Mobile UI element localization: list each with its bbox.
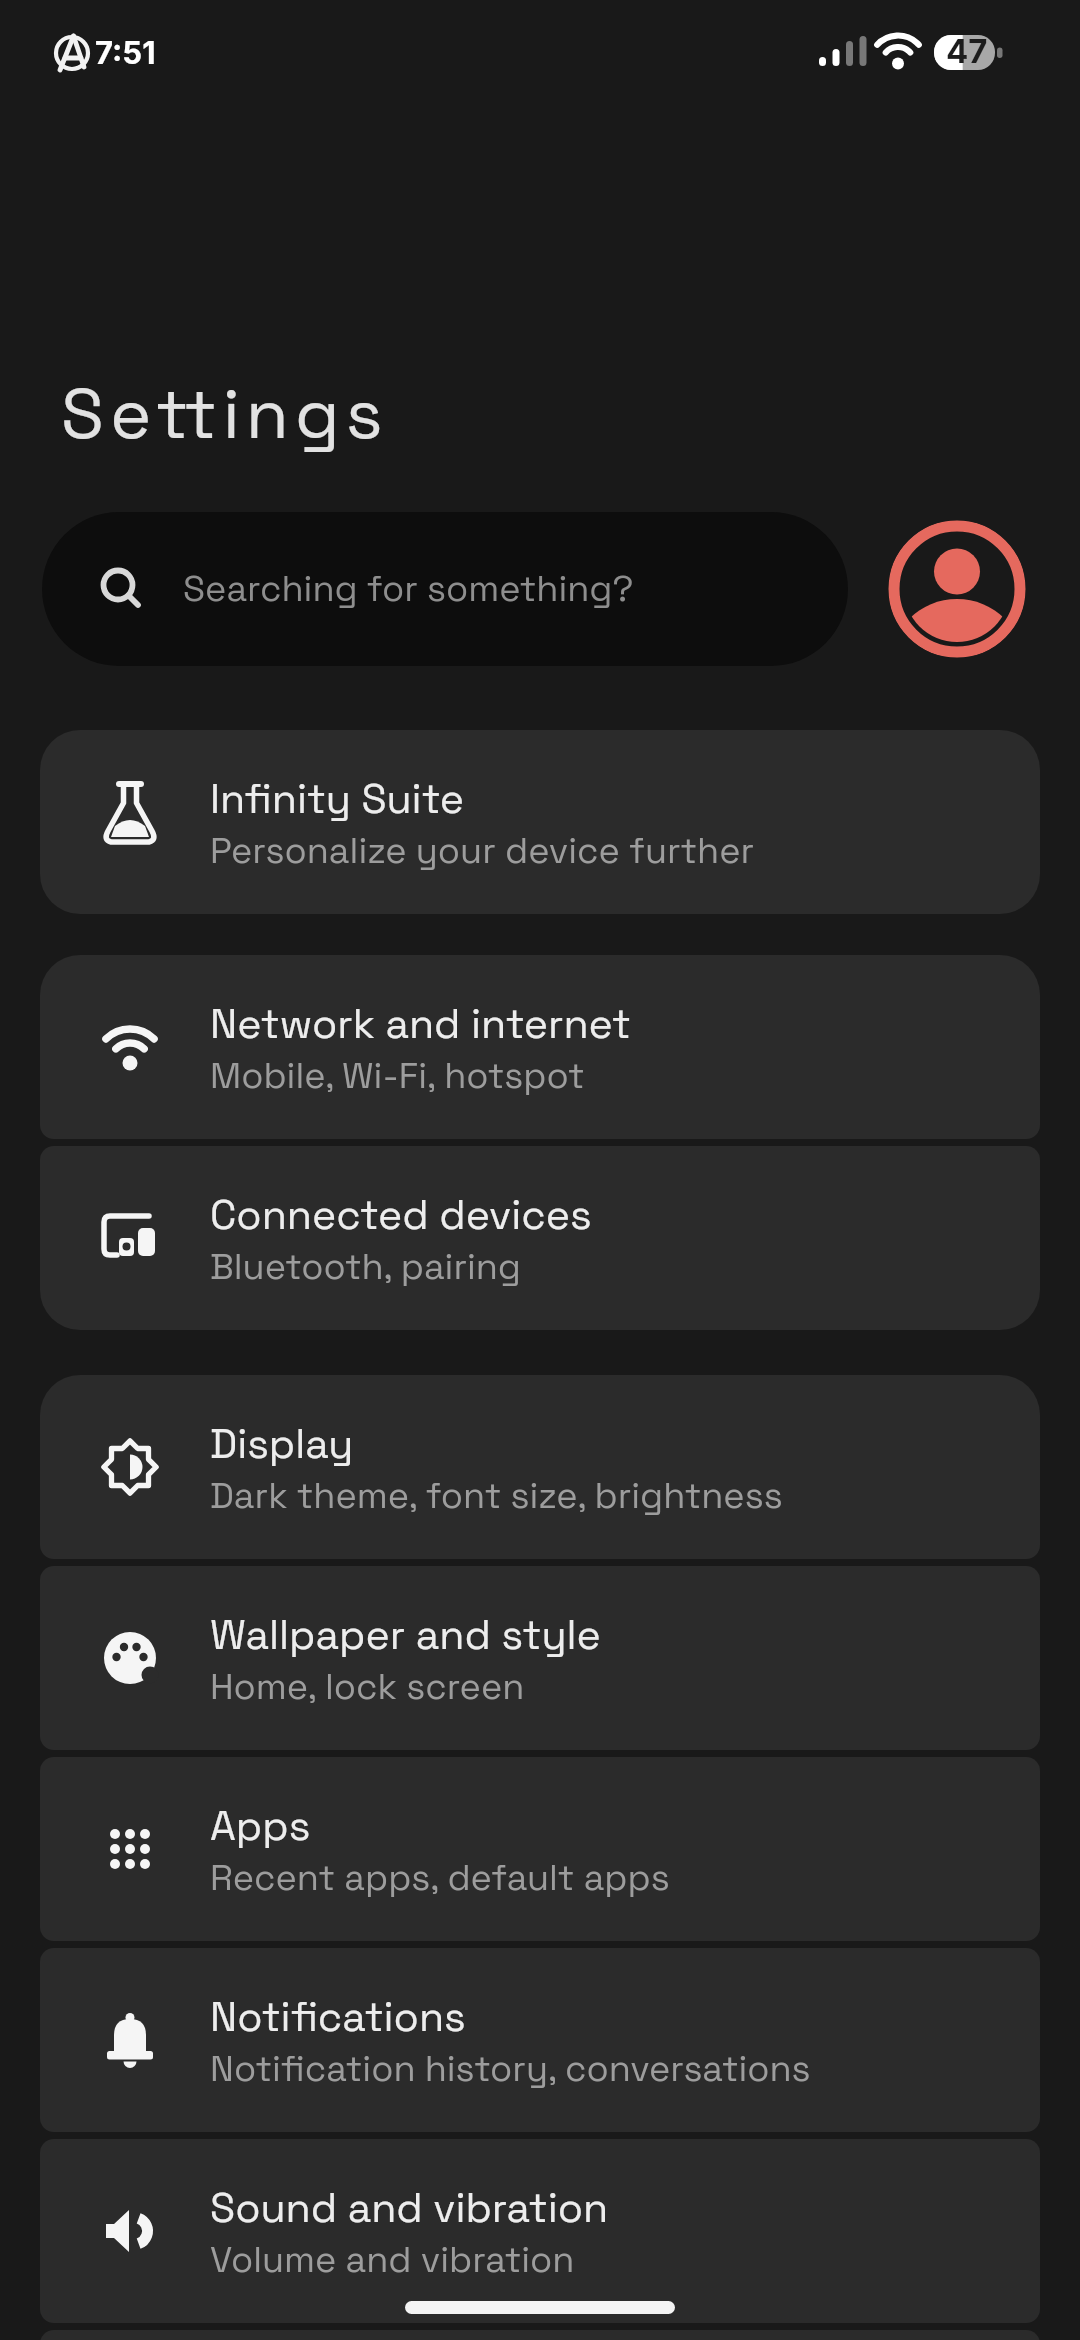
staticText: Dark theme, font size, brightness	[210, 1473, 783, 1519]
staticText: Connected devices	[210, 1189, 592, 1241]
staticText: Settings	[61, 369, 389, 458]
staticText: 7:51	[95, 34, 156, 72]
staticText: Infinity Suite	[210, 773, 465, 825]
staticText: Volume and vibration	[210, 2237, 575, 2283]
button[interactable]: Wallpaper and style	[40, 1566, 1040, 1750]
staticText: Personalize your device further	[210, 828, 755, 874]
staticText: 47	[946, 31, 988, 71]
button[interactable]: Sound and vibration	[40, 2139, 1040, 2323]
staticText: Display	[210, 1418, 354, 1470]
staticText: Sound and vibration	[210, 2182, 609, 2234]
button[interactable]: Apps	[40, 1757, 1040, 1941]
staticText: Mobile, Wi-Fi, hotspot	[210, 1053, 585, 1099]
button[interactable]	[888, 520, 1026, 658]
staticText: Wallpaper and style	[210, 1609, 601, 1661]
staticText: Apps	[210, 1800, 311, 1852]
button[interactable]: Infinity Suite	[40, 730, 1040, 914]
button[interactable]: Notifications	[40, 1948, 1040, 2132]
button[interactable]: Searching for something?	[42, 512, 848, 666]
staticText: Home, lock screen	[210, 1664, 525, 1710]
staticText: Network and internet	[210, 998, 631, 1050]
button[interactable]: Display	[40, 1375, 1040, 1559]
staticText: Notifications	[210, 1991, 466, 2043]
staticText: Bluetooth, pairing	[210, 1244, 521, 1290]
staticText: Searching for something?	[183, 566, 634, 612]
staticText: Recent apps, default apps	[210, 1855, 670, 1901]
staticText: Notification history, conversations	[210, 2046, 811, 2092]
button[interactable]: Connected devices	[40, 1146, 1040, 1330]
button[interactable]: Network and internet	[40, 955, 1040, 1139]
